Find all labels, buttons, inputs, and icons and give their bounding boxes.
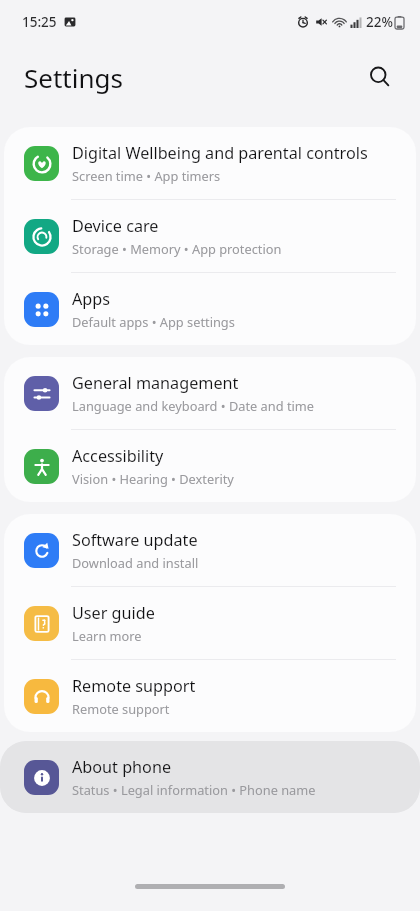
staticText: Learn more xyxy=(72,627,142,644)
button[interactable]: General management xyxy=(4,357,416,429)
staticText: Accessibility xyxy=(72,445,164,467)
staticText: General management xyxy=(72,372,239,394)
staticText: Download and install xyxy=(72,554,199,571)
staticText: Vision • Hearing • Dexterity xyxy=(72,470,234,487)
staticText: Apps xyxy=(72,288,111,310)
staticText: About phone xyxy=(72,756,172,778)
staticText: Storage • Memory • App protection xyxy=(72,240,282,257)
staticText: Language and keyboard • Date and time xyxy=(72,397,315,414)
staticText: Status • Legal information • Phone name xyxy=(72,781,316,798)
staticText: 22% xyxy=(366,13,393,31)
staticText: Remote support xyxy=(72,700,170,717)
staticText: Digital Wellbeing and parental controls xyxy=(72,142,368,164)
button[interactable]: About phone xyxy=(0,741,420,813)
button[interactable]: Digital Wellbeing and parental controls xyxy=(4,127,416,199)
staticText: 15:25 xyxy=(22,13,57,31)
button[interactable]: Remote support xyxy=(4,660,416,732)
staticText: User guide xyxy=(72,602,155,624)
button[interactable]: Apps xyxy=(4,273,416,345)
staticText: Default apps • App settings xyxy=(72,313,235,330)
button[interactable]: Software update xyxy=(4,514,416,586)
button[interactable]: User guide xyxy=(4,587,416,659)
staticText: Screen time • App timers xyxy=(72,167,221,184)
button[interactable]: Device care xyxy=(4,200,416,272)
button[interactable]: Accessibility xyxy=(4,430,416,502)
staticText: Device care xyxy=(72,215,159,237)
button[interactable]: Search xyxy=(360,57,400,97)
staticText: Settings xyxy=(24,60,123,95)
staticText: Remote support xyxy=(72,675,196,697)
staticText: Software update xyxy=(72,529,198,551)
